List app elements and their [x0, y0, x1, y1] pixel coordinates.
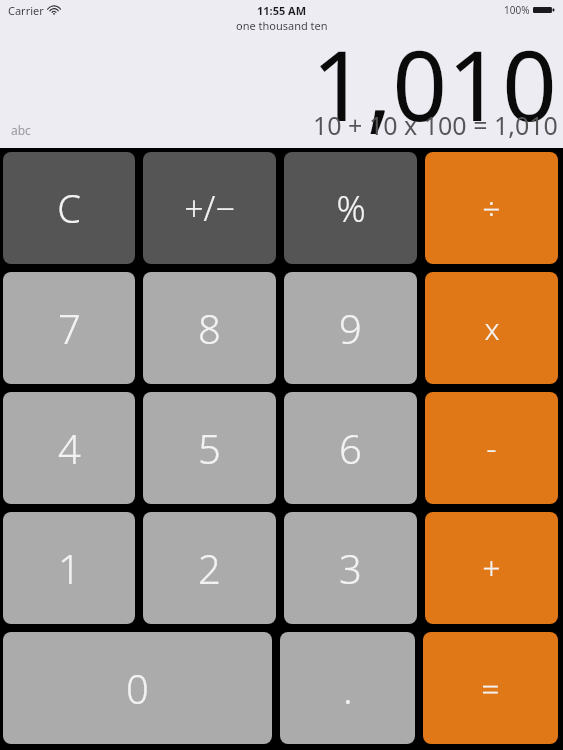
staticText: 0	[126, 661, 149, 715]
staticText: +/−	[184, 185, 235, 231]
staticText: -	[486, 426, 497, 470]
staticText: 7	[58, 301, 81, 355]
staticText: x	[484, 308, 500, 349]
button[interactable]: 5	[143, 392, 276, 504]
button[interactable]: 0	[3, 632, 272, 744]
staticText: 8	[198, 301, 221, 355]
button[interactable]: 4	[3, 392, 135, 504]
button[interactable]: 7	[3, 272, 135, 384]
button[interactable]: 6	[284, 392, 417, 504]
button[interactable]: 1	[3, 512, 135, 624]
staticText: 4	[58, 421, 81, 475]
staticText: ÷	[482, 186, 501, 230]
staticText: 11:55 AM	[257, 3, 307, 18]
button[interactable]: 2	[143, 512, 276, 624]
staticText: =	[481, 666, 500, 710]
button[interactable]: C	[3, 152, 135, 264]
staticText: 5	[198, 421, 221, 475]
staticText: one thousand ten	[236, 18, 328, 33]
staticText: .	[343, 661, 353, 715]
staticText: 9	[339, 301, 362, 355]
button[interactable]: x	[425, 272, 558, 384]
staticText: %	[336, 184, 366, 233]
button[interactable]: ÷	[425, 152, 558, 264]
button[interactable]: 8	[143, 272, 276, 384]
staticText: 1,010	[311, 18, 557, 149]
button[interactable]: 3	[284, 512, 417, 624]
button[interactable]: -	[425, 392, 558, 504]
staticText: Carrier	[8, 3, 44, 18]
button[interactable]: abc	[11, 122, 31, 138]
button[interactable]: %	[284, 152, 417, 264]
staticText: +	[482, 546, 501, 590]
staticText: 6	[339, 421, 362, 475]
staticText: 3	[339, 541, 362, 595]
button[interactable]: +/−	[143, 152, 276, 264]
button[interactable]: .	[280, 632, 415, 744]
button[interactable]: +	[425, 512, 558, 624]
staticText: 100%	[504, 3, 530, 17]
staticText: 2	[198, 541, 221, 595]
button[interactable]: 9	[284, 272, 417, 384]
staticText: 1	[58, 541, 81, 595]
button[interactable]: =	[423, 632, 558, 744]
staticText: abc	[11, 122, 31, 138]
staticText: C	[57, 182, 81, 234]
staticText: 10 + 10 x 100 = 1,010	[313, 108, 558, 142]
